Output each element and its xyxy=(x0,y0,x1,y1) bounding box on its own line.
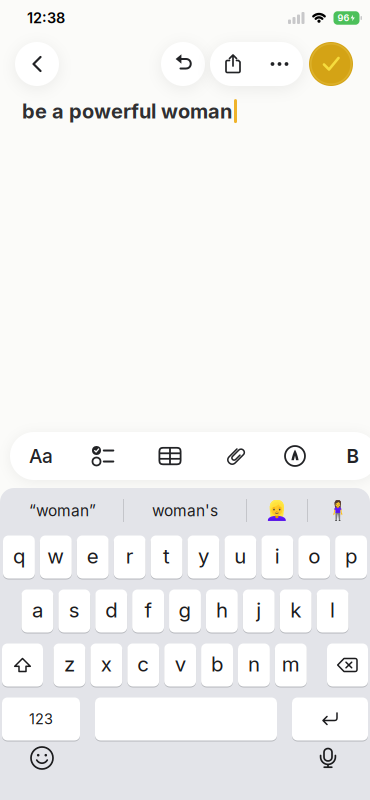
staticText: 👱‍♀️ xyxy=(265,499,289,522)
button[interactable]: y xyxy=(187,535,219,579)
button[interactable]: c xyxy=(127,643,159,687)
staticText: s xyxy=(69,598,80,622)
button[interactable] xyxy=(161,42,205,86)
button[interactable]: f xyxy=(132,589,164,633)
staticText: j xyxy=(256,598,261,622)
button[interactable] xyxy=(292,697,368,741)
button[interactable]: t xyxy=(151,535,182,579)
button[interactable]: n xyxy=(238,643,270,687)
staticText: z xyxy=(64,652,75,676)
button[interactable] xyxy=(327,643,368,687)
staticText: e xyxy=(87,544,99,568)
button[interactable] xyxy=(210,42,256,86)
button[interactable]: g xyxy=(169,589,201,633)
staticText: v xyxy=(175,652,186,676)
button[interactable]: p xyxy=(335,535,367,579)
button[interactable]: q xyxy=(3,535,35,579)
button[interactable]: w xyxy=(40,535,72,579)
button[interactable]: k xyxy=(280,589,312,633)
staticText: m xyxy=(282,652,300,676)
button[interactable]: l xyxy=(317,589,348,633)
button[interactable] xyxy=(256,42,303,86)
staticText: woman's xyxy=(152,501,218,520)
staticText: i xyxy=(275,544,280,568)
staticText: w xyxy=(47,544,64,568)
staticText: x xyxy=(101,652,112,676)
staticText: p xyxy=(345,544,357,568)
staticText: 123 xyxy=(29,710,53,728)
staticText: Aa xyxy=(29,444,53,467)
staticText: B xyxy=(346,444,359,467)
button[interactable]: B xyxy=(326,432,370,480)
button[interactable]: z xyxy=(53,643,85,687)
button[interactable]: Aa xyxy=(14,432,68,480)
button[interactable]: h xyxy=(206,589,238,633)
staticText: q xyxy=(13,544,25,568)
button[interactable]: “woman” xyxy=(2,488,123,533)
button[interactable] xyxy=(95,697,277,741)
button[interactable]: r xyxy=(114,535,146,579)
staticText: g xyxy=(178,598,191,622)
staticText: k xyxy=(290,598,301,622)
button[interactable]: j xyxy=(243,589,275,633)
button[interactable]: a xyxy=(21,589,53,633)
staticText: l xyxy=(330,598,335,622)
staticText: a xyxy=(32,598,43,622)
staticText: u xyxy=(234,544,246,568)
button[interactable]: e xyxy=(77,535,109,579)
staticText: n xyxy=(248,652,260,676)
button[interactable]: woman's xyxy=(124,488,246,533)
button[interactable]: d xyxy=(95,589,127,633)
staticText: y xyxy=(198,544,209,568)
button[interactable]: 123 xyxy=(2,697,80,741)
button[interactable] xyxy=(268,432,322,480)
button[interactable] xyxy=(209,432,263,480)
button[interactable]: m xyxy=(275,643,307,687)
button[interactable]: x xyxy=(90,643,122,687)
staticText: “woman” xyxy=(29,501,96,520)
button[interactable]: 🧍‍♀️ xyxy=(308,488,368,533)
staticText: b xyxy=(211,652,223,676)
button[interactable]: i xyxy=(261,535,293,579)
staticText: be a powerful woman xyxy=(22,99,232,123)
button[interactable]: v xyxy=(164,643,196,687)
button[interactable]: 👱‍♀️ xyxy=(247,488,307,533)
staticText: h xyxy=(216,598,228,622)
staticText: f xyxy=(145,598,152,622)
staticText: d xyxy=(105,598,117,622)
staticText: 96 xyxy=(337,13,349,23)
button[interactable]: s xyxy=(58,589,90,633)
staticText: 12:38 xyxy=(27,9,65,27)
button[interactable] xyxy=(15,42,59,86)
button[interactable]: b xyxy=(201,643,233,687)
staticText: o xyxy=(308,544,320,568)
button[interactable]: u xyxy=(224,535,256,579)
staticText: c xyxy=(137,652,149,676)
staticText: r xyxy=(126,544,134,568)
staticText: 🧍‍♀️ xyxy=(326,499,350,522)
button[interactable] xyxy=(143,432,197,480)
button[interactable] xyxy=(313,743,343,773)
button[interactable]: o xyxy=(298,535,330,579)
button[interactable] xyxy=(2,643,43,687)
button[interactable] xyxy=(309,42,353,86)
staticText: t xyxy=(163,544,170,568)
button[interactable] xyxy=(27,743,57,773)
button[interactable] xyxy=(76,432,130,480)
